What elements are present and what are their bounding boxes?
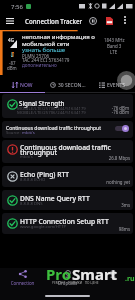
staticText: -87 <box>9 60 16 66</box>
staticText: throughput <box>20 148 57 157</box>
staticText: -76 dBm <box>87 105 129 111</box>
staticText: Dropcalls <box>45 280 90 286</box>
button[interactable]: EVENTS <box>90 78 135 92</box>
button[interactable]: NOW <box>0 78 45 92</box>
button[interactable]: Continuous download traffic <box>2 140 133 163</box>
staticText: Connection <box>0 280 45 286</box>
staticText: 4G <box>8 37 14 43</box>
staticText: 1843 MHz <box>104 37 125 43</box>
staticText: DNS Name Query RTT <box>20 194 90 203</box>
staticText: неполная информация о <box>22 33 95 41</box>
button[interactable]: Continuous download traffic throughput <box>2 121 133 138</box>
staticText: Signal Strength <box>19 99 65 107</box>
button[interactable]: Connection <box>0 270 45 290</box>
button[interactable]: More options <box>119 14 131 26</box>
staticText: dBm <box>7 65 17 71</box>
staticText: 8.8.8.8 DNS <box>20 201 43 207</box>
button[interactable]: Signal Strength <box>2 94 133 118</box>
button[interactable]: DNS Name Query RTT <box>2 190 133 210</box>
staticText: Connection Tracker <box>25 17 83 25</box>
staticText: MOBILE/LTE/25706/244/51634179 <box>17 109 86 115</box>
staticText: 3ms <box>90 202 130 208</box>
staticText: мобильной сети <box>22 40 70 48</box>
staticText: 26.8 Mbps <box>90 155 130 161</box>
button[interactable]: Open navigation menu <box>3 14 17 28</box>
button[interactable]: Export PDF <box>102 14 116 28</box>
staticText: mbit/s <box>22 130 35 136</box>
staticText: дополнительно <box>22 62 57 68</box>
staticText: EVENTS <box>107 82 126 89</box>
staticText: Band 3 <box>107 43 122 49</box>
staticText: РЕМОНТ ТЕХНИКИ ПО ЦЕНЕ <box>52 281 99 285</box>
staticText: www.google.com/HTTP <box>20 224 67 230</box>
staticText: nothing yet <box>90 179 130 185</box>
staticText: -76 dBm <box>87 109 129 115</box>
staticText: TAC 244 ECI 57634179 <box>22 57 70 63</box>
staticText: Source: <box>6 130 22 136</box>
staticText: 98ms <box>90 226 130 232</box>
staticText: MOBILE/LTE/25706/244/51634179 <box>17 105 86 111</box>
button[interactable]: Pause <box>86 14 100 28</box>
button[interactable]: 30 SECON... <box>45 78 90 92</box>
staticText: Echo (Ping) RTT <box>20 170 70 179</box>
staticText: Pro <box>46 264 72 284</box>
staticText: узнать больше <box>22 46 66 54</box>
staticText: 8.8.8.8 ECHO <box>20 177 46 183</box>
staticText: NOW <box>20 82 33 89</box>
staticText: mbit/s <box>20 154 33 160</box>
button[interactable]: Echo (Ping) RTT <box>2 166 133 187</box>
button[interactable]: Dropcalls <box>45 270 90 290</box>
staticText: Continuous download traffic <box>20 143 111 152</box>
staticText: Continuous download traffic throughput <box>6 125 101 132</box>
button[interactable] <box>90 270 135 290</box>
staticText: PLMN 25706 <box>22 53 50 59</box>
staticText: .ru <box>125 274 135 284</box>
staticText: Smart <box>72 264 118 284</box>
staticText: 7:56 <box>11 3 23 11</box>
staticText: 30 SECON... <box>58 82 86 89</box>
button[interactable]: HTTP Connection Setup RTT <box>2 213 133 234</box>
staticText: LTE <box>110 49 118 55</box>
staticText: HTTP Connection Setup RTT <box>20 217 109 226</box>
